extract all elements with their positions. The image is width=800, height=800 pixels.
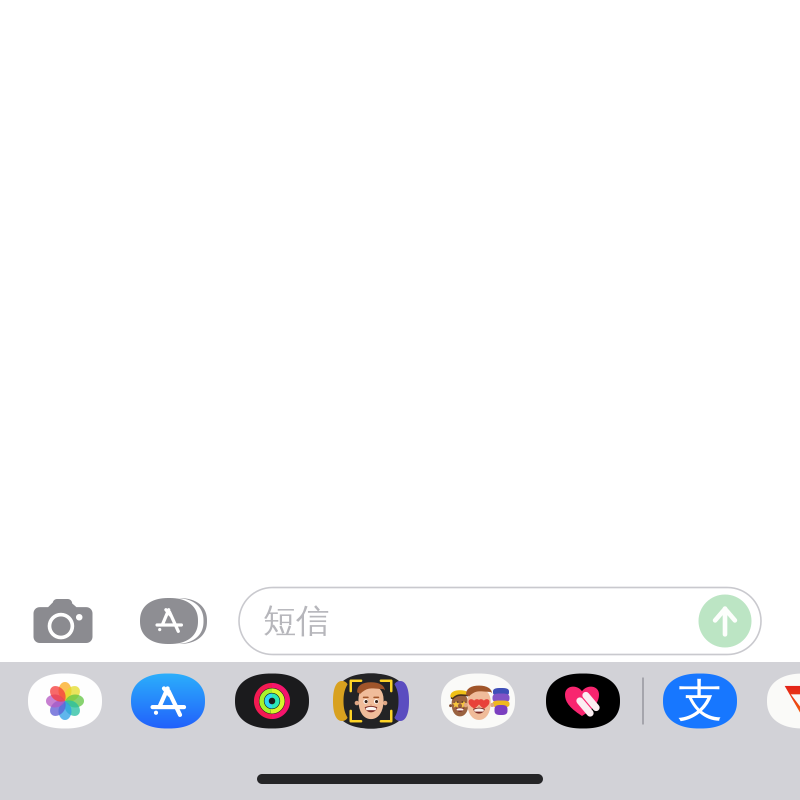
button[interactable]: Photos (28, 673, 102, 728)
button[interactable]: App Store apps (131, 595, 207, 647)
button[interactable]: Memoji Stickers (441, 673, 515, 728)
button[interactable]: Digital Touch (546, 673, 620, 728)
staticText: 短信 (263, 600, 329, 641)
button[interactable]: More apps (767, 673, 800, 728)
button[interactable]: Camera (27, 593, 98, 649)
staticText: 支 (677, 673, 722, 729)
button[interactable]: App Store (131, 673, 205, 728)
button[interactable]: Memoji (334, 673, 408, 728)
button[interactable]: Fitness (235, 673, 309, 728)
button[interactable]: Send (695, 591, 754, 650)
button[interactable]: Alipay (663, 673, 737, 728)
